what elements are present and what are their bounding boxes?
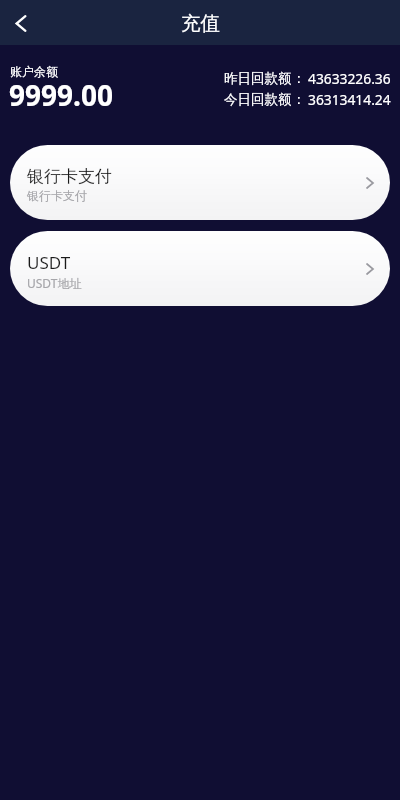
staticText: 今日回款额 [224,91,292,108]
staticText: 9999.00 [9,76,113,114]
button[interactable]: 银行卡支付 [10,145,390,220]
button[interactable]: USDT [10,231,390,306]
staticText: 充值 [181,11,220,36]
staticText: 银行卡支付 [27,188,87,203]
staticText: ： [292,70,306,87]
staticText: USDT地址 [27,275,82,291]
staticText: 36313414.24 [308,90,391,109]
staticText: 银行卡支付 [27,166,112,187]
staticText: 账户余额 [10,64,58,79]
staticText: USDT [27,251,71,274]
button[interactable]: Back [0,3,40,43]
staticText: 昨日回款额 [224,70,292,87]
staticText: 43633226.36 [308,69,391,88]
staticText: ： [292,91,306,108]
